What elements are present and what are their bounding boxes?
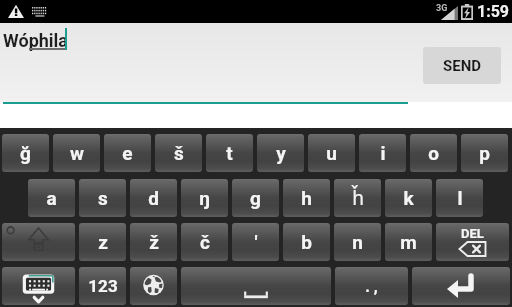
button[interactable]: h bbox=[283, 179, 330, 217]
staticText: u bbox=[326, 142, 337, 164]
button[interactable]: p bbox=[461, 134, 508, 172]
button[interactable]: ' bbox=[232, 223, 279, 261]
staticText: z bbox=[98, 231, 108, 253]
button[interactable]: Space bbox=[181, 267, 331, 305]
button[interactable]: o bbox=[410, 134, 457, 172]
button[interactable]: ğ bbox=[2, 134, 49, 172]
staticText: ŋ bbox=[199, 187, 210, 209]
staticText: y bbox=[276, 142, 286, 164]
button[interactable]: č bbox=[181, 223, 228, 261]
button[interactable]: y bbox=[257, 134, 304, 172]
staticText: d bbox=[148, 187, 159, 209]
staticText: a bbox=[46, 187, 57, 209]
button[interactable]: š bbox=[155, 134, 202, 172]
staticText: h bbox=[301, 187, 312, 209]
staticText: Wóphila bbox=[3, 30, 69, 51]
button[interactable]: Shift bbox=[2, 223, 75, 261]
button[interactable]: e bbox=[104, 134, 151, 172]
staticText: . , bbox=[365, 277, 378, 296]
button[interactable]: w bbox=[53, 134, 100, 172]
staticText: ȟ bbox=[352, 185, 364, 211]
staticText: 1:59 bbox=[477, 2, 510, 21]
staticText: č bbox=[200, 231, 210, 253]
button[interactable]: t bbox=[206, 134, 253, 172]
button[interactable]: ȟ bbox=[334, 179, 381, 217]
button[interactable]: m bbox=[385, 223, 432, 261]
staticText: 3G bbox=[436, 3, 448, 14]
button[interactable]: d bbox=[130, 179, 177, 217]
staticText: b bbox=[301, 231, 312, 253]
button[interactable]: SEND bbox=[423, 47, 501, 84]
button[interactable]: b bbox=[283, 223, 330, 261]
button[interactable]: Delete bbox=[436, 223, 509, 261]
staticText: e bbox=[122, 142, 133, 164]
staticText: w bbox=[70, 142, 84, 164]
staticText: SEND bbox=[443, 57, 482, 75]
staticText: m bbox=[400, 231, 417, 253]
staticText: o bbox=[428, 142, 439, 164]
button[interactable]: s bbox=[79, 179, 126, 217]
button[interactable]: 123 bbox=[79, 267, 126, 305]
staticText: s bbox=[98, 187, 108, 209]
staticText: ž bbox=[149, 231, 159, 253]
staticText: n bbox=[352, 231, 363, 253]
button[interactable]: g bbox=[232, 179, 279, 217]
staticText: l bbox=[457, 187, 463, 209]
staticText: ' bbox=[254, 231, 258, 253]
button[interactable]: n bbox=[334, 223, 381, 261]
button[interactable]: i bbox=[359, 134, 406, 172]
staticText: i bbox=[380, 142, 386, 164]
staticText: DEL bbox=[461, 226, 484, 241]
button[interactable]: Change language bbox=[130, 267, 177, 305]
button[interactable]: k bbox=[385, 179, 432, 217]
button[interactable]: . , bbox=[335, 267, 408, 305]
button[interactable]: u bbox=[308, 134, 355, 172]
staticText: p bbox=[479, 142, 490, 164]
button[interactable]: a bbox=[28, 179, 75, 217]
button[interactable]: z bbox=[79, 223, 126, 261]
button[interactable]: ž bbox=[130, 223, 177, 261]
staticText: ğ bbox=[20, 142, 31, 164]
button[interactable]: Enter bbox=[412, 267, 510, 305]
staticText: k bbox=[403, 187, 414, 209]
button[interactable]: l bbox=[436, 179, 483, 217]
button[interactable]: ŋ bbox=[181, 179, 228, 217]
staticText: 123 bbox=[88, 276, 118, 296]
staticText: t bbox=[226, 142, 233, 164]
staticText: g bbox=[250, 187, 261, 209]
staticText: š bbox=[174, 142, 184, 164]
button[interactable]: Hide keyboard bbox=[2, 267, 75, 305]
